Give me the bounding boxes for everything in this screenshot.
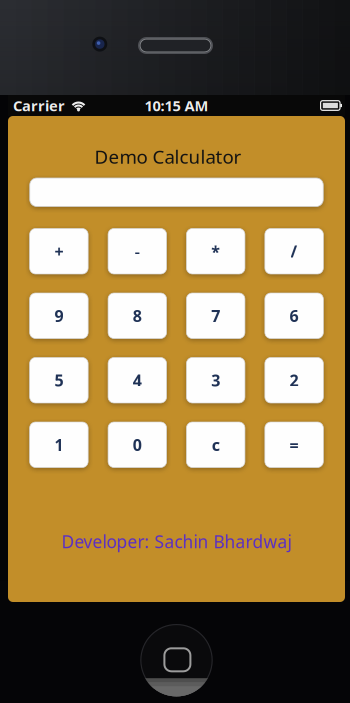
staticText: 8 [133, 305, 142, 326]
staticText: 1 [54, 434, 63, 455]
staticText: 6 [290, 305, 299, 326]
staticText: - [135, 241, 140, 262]
button[interactable]: 2 [265, 357, 323, 403]
button[interactable]: 7 [186, 293, 245, 338]
staticText: 3 [211, 370, 220, 391]
button[interactable]: 0 [108, 422, 167, 467]
staticText: 4 [133, 370, 142, 391]
staticText: 2 [290, 370, 299, 391]
staticText: / [291, 241, 298, 262]
button[interactable]: - [108, 228, 167, 274]
button[interactable]: / [265, 228, 323, 274]
staticText: 10:15 AM [144, 96, 208, 115]
button[interactable]: 3 [186, 357, 245, 403]
button[interactable]: 6 [265, 293, 323, 338]
staticText: c [212, 434, 220, 455]
button[interactable]: + [30, 228, 88, 274]
staticText: 5 [54, 370, 63, 391]
button[interactable]: 5 [30, 357, 88, 403]
staticText: 7 [211, 305, 220, 326]
staticText: + [54, 241, 63, 262]
button[interactable]: c [186, 422, 245, 467]
button[interactable]: 4 [108, 357, 167, 403]
button[interactable]: 9 [30, 293, 88, 338]
button[interactable]: = [265, 422, 323, 467]
staticText: Developer: Sachin Bhardwaj [61, 530, 291, 553]
staticText: * [211, 241, 220, 262]
staticText: = [290, 434, 299, 455]
button[interactable]: 1 [30, 422, 88, 467]
staticText: Demo Calculator [94, 144, 241, 169]
staticText: 9 [54, 305, 63, 326]
button[interactable]: 8 [108, 293, 167, 338]
staticText: Carrier [13, 96, 65, 115]
button[interactable]: * [186, 228, 245, 274]
staticText: 0 [133, 434, 142, 455]
